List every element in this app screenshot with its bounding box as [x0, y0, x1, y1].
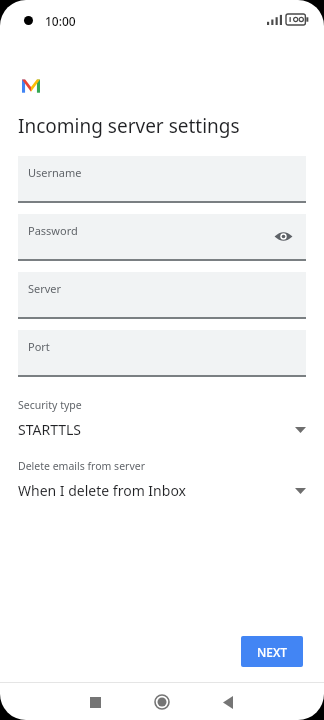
staticText: Server — [28, 281, 62, 296]
staticText: Security type — [18, 398, 82, 412]
staticText: NEXT — [257, 644, 288, 660]
staticText: Delete emails from server — [18, 459, 145, 473]
staticText: Username — [28, 165, 82, 180]
button[interactable]: Server — [18, 272, 306, 319]
staticText: Port — [28, 339, 50, 354]
button[interactable]: Security type — [0, 398, 324, 439]
button[interactable]: Password — [18, 214, 306, 261]
staticText: When I delete from Inbox — [18, 481, 295, 500]
staticText: STARTTLS — [18, 420, 295, 439]
staticText: Incoming server settings — [18, 113, 240, 139]
staticText: Password — [28, 223, 78, 238]
button[interactable]: Username — [18, 156, 306, 203]
button[interactable]: NEXT — [241, 636, 303, 667]
button[interactable]: Recent apps — [78, 685, 112, 719]
button[interactable]: Show password — [274, 227, 293, 246]
button[interactable]: Delete emails from server — [0, 459, 324, 500]
staticText: 10:00 — [45, 13, 76, 29]
button[interactable]: Home — [145, 685, 179, 719]
button[interactable]: Port — [18, 330, 306, 377]
button[interactable]: Back — [211, 685, 245, 719]
